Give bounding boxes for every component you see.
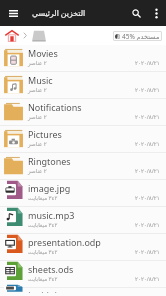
staticText: image.jpg <box>28 182 71 194</box>
staticText: ٢ عناصر <box>28 140 47 147</box>
staticText: ٢ عناصر <box>28 59 47 66</box>
staticText: ٣٤٢ ميغابايت <box>28 221 58 228</box>
button[interactable]: Movies <box>0 45 166 72</box>
staticText: text.txt <box>28 288 58 293</box>
staticText: Ringtones <box>28 155 71 167</box>
button[interactable]: image.jpg <box>0 180 166 207</box>
button[interactable]: Pictures <box>0 126 166 153</box>
button[interactable]: Search <box>125 0 147 26</box>
staticText: ٢٠٢٠/٨/٢١ <box>135 167 160 174</box>
staticText: ٢٠٢٠/٨/٢١ <box>135 194 160 201</box>
staticText: ٣٤٢ ميغابايت <box>28 275 58 282</box>
button[interactable]: Home <box>3 27 20 44</box>
staticText: ٣٤٢ ميغابايت <box>28 194 58 201</box>
button[interactable]: Open navigation drawer <box>0 0 26 26</box>
staticText: ٣٤٢ ميغابايت <box>28 248 58 255</box>
button[interactable]: Music <box>0 72 166 99</box>
button[interactable]: text.txt <box>0 288 166 296</box>
staticText: sheets.ods <box>28 263 74 275</box>
staticText: ٢٠٢٠/٨/٢١ <box>135 59 160 66</box>
button[interactable]: sheets.ods <box>0 261 166 288</box>
staticText: Notifications <box>28 101 82 113</box>
staticText: ٢٠٢٠/٨/٢١ <box>135 248 160 255</box>
staticText: Music <box>28 74 53 86</box>
staticText: 45% مستخدم <box>122 32 160 41</box>
staticText: ٢٠٢٠/٨/٢١ <box>135 221 160 228</box>
staticText: Movies <box>28 47 58 59</box>
staticText: ٢ عناصر <box>28 113 47 120</box>
staticText: ٢٠٢٠/٨/٢١ <box>135 140 160 147</box>
staticText: ٢ عناصر <box>28 167 47 174</box>
button[interactable]: Internal storage <box>30 27 47 44</box>
staticText: ٢٠٢٠/٨/٢١ <box>135 113 160 120</box>
staticText: presentation.odp <box>28 236 101 248</box>
staticText: ٢٠٢٠/٨/٢١ <box>135 86 160 93</box>
staticText: ٢ عناصر <box>28 86 47 93</box>
button[interactable]: More options <box>147 0 165 26</box>
staticText: التخزين الرئيسي <box>32 8 86 19</box>
button[interactable]: music.mp3 <box>0 207 166 234</box>
staticText: Pictures <box>28 128 62 140</box>
button[interactable]: Notifications <box>0 99 166 126</box>
button[interactable]: Ringtones <box>0 153 166 180</box>
button[interactable]: presentation.odp <box>0 234 166 261</box>
staticText: ٢٠٢٠/٨/٢١ <box>135 275 160 282</box>
staticText: music.mp3 <box>28 209 75 221</box>
button[interactable]: 45% مستخدم <box>113 31 162 41</box>
